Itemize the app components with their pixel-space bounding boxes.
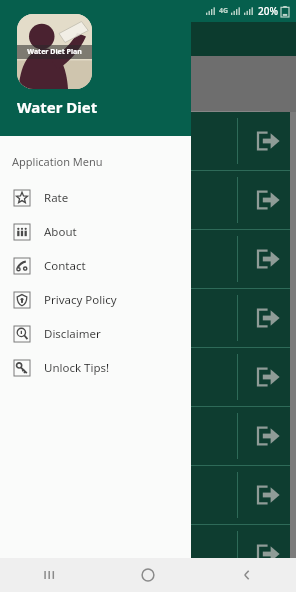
staticText: About <box>44 224 77 240</box>
button[interactable]: Unlock Tips! <box>0 351 191 385</box>
button[interactable]: Privacy Policy <box>0 283 191 317</box>
staticText: Water & Weight <box>16 545 237 564</box>
staticText: Contact <box>44 258 86 274</box>
staticText: Benefits of Water <box>16 132 237 151</box>
button[interactable]: How Much Water <box>0 171 296 229</box>
staticText: Rate <box>44 190 69 206</box>
staticText: Drinking Water Tips <box>16 486 237 505</box>
staticText: Unlock Tips! <box>44 360 110 376</box>
button[interactable]: Water Fasting <box>0 407 296 465</box>
staticText: 20% <box>258 4 278 18</box>
button[interactable]: Disclaimer <box>0 317 191 351</box>
staticText: Water Diet Plan <box>56 29 168 49</box>
button[interactable]: Drinking Water Tips <box>0 466 296 524</box>
button[interactable]: Benefits of Water <box>0 112 296 170</box>
staticText: Lemon Water <box>16 368 237 387</box>
staticText: Water Diet Plan <box>27 47 82 57</box>
staticText: Water Diet Plan <box>16 250 237 269</box>
button[interactable]: Detox Water <box>0 289 296 347</box>
staticText: 4G <box>219 6 229 16</box>
staticText: Disclaimer <box>44 326 101 342</box>
button[interactable]: Contact <box>0 249 191 283</box>
staticText: Water Fasting <box>16 427 237 446</box>
staticText: Detox Water <box>16 309 237 328</box>
button[interactable]: Water Diet Plan <box>0 230 296 288</box>
button[interactable]: Recents <box>0 558 98 592</box>
button[interactable]: Back <box>197 558 296 592</box>
button[interactable]: Lemon Water <box>0 348 296 406</box>
staticText: Privacy Policy <box>44 292 117 308</box>
staticText: Application Menu <box>12 154 103 169</box>
button[interactable]: Rate <box>0 181 191 215</box>
button[interactable]: About <box>0 215 191 249</box>
button[interactable]: Home <box>98 558 197 592</box>
staticText: 01:20 <box>8 4 34 18</box>
staticText: Water Diet <box>17 97 98 117</box>
button[interactable]: Water & Weight <box>0 525 296 583</box>
staticText: How Much Water <box>16 191 237 210</box>
